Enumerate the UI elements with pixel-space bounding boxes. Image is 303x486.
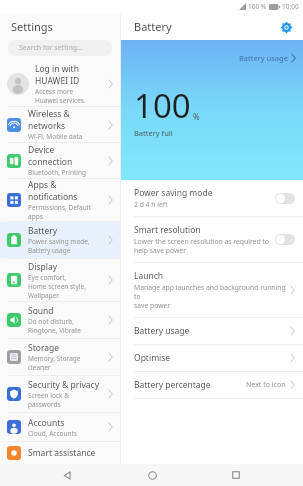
- staticText: Battery percentage: [134, 379, 211, 391]
- staticText: Power saving mode: [134, 187, 213, 199]
- button[interactable]: Toggle: [275, 193, 295, 204]
- staticText: Display: [28, 261, 57, 273]
- staticText: 10:00: [282, 2, 299, 11]
- staticText: Ringtone, Vibrate: [28, 326, 81, 335]
- staticText: Battery usage: [239, 53, 288, 63]
- staticText: Launch: [134, 270, 164, 282]
- staticText: Eye comfort,: [28, 273, 67, 282]
- staticText: Battery usage: [134, 325, 190, 337]
- button[interactable]: Toggle: [275, 234, 295, 245]
- staticText: Optimise: [134, 352, 171, 364]
- staticText: notifications: [28, 191, 78, 203]
- button[interactable]: Recent apps: [219, 464, 253, 486]
- staticText: Settings: [11, 19, 53, 34]
- button[interactable]: Back: [50, 464, 84, 486]
- staticText: Wireless &: [28, 108, 70, 120]
- staticText: networks: [28, 120, 66, 132]
- staticText: Smart resolution: [134, 224, 201, 236]
- staticText: Log in with: [35, 63, 79, 75]
- button[interactable]: Storage: [0, 339, 120, 375]
- staticText: Battery full: [134, 128, 173, 138]
- staticText: Bluetooth, Printing: [28, 168, 86, 177]
- staticText: 100: [134, 83, 191, 128]
- button[interactable]: Power saving mode: [121, 180, 303, 216]
- staticText: Next to icon: [246, 380, 286, 390]
- button[interactable]: Search for setting...: [8, 40, 112, 56]
- staticText: Manage app launches and background runni…: [134, 283, 290, 310]
- staticText: %: [193, 111, 200, 122]
- staticText: Home screen style,: [28, 282, 86, 291]
- button[interactable]: Battery percentage: [121, 372, 303, 398]
- button[interactable]: Display: [0, 259, 120, 301]
- button[interactable]: Home: [135, 464, 169, 486]
- staticText: Wallpaper: [28, 291, 59, 300]
- staticText: Security & privacy: [28, 379, 99, 391]
- button[interactable]: Battery: [0, 222, 120, 258]
- staticText: 2 d 4 h left: [134, 200, 168, 209]
- staticText: Cloud, Accounts: [28, 429, 77, 438]
- staticText: Battery usage: [28, 246, 71, 255]
- button[interactable]: Accounts: [0, 413, 120, 441]
- staticText: Storage: [28, 342, 60, 354]
- staticText: Apps &: [28, 179, 57, 191]
- staticText: passwords: [28, 400, 61, 409]
- staticText: Lower the screen resolution as required …: [134, 237, 269, 255]
- staticText: Screen lock &: [28, 391, 69, 400]
- button[interactable]: Smart assistance: [0, 442, 120, 464]
- staticText: Permissions, Default: [28, 203, 91, 212]
- staticText: 100 %: [248, 2, 267, 11]
- button[interactable]: Smart resolution: [121, 217, 303, 262]
- staticText: Battery: [134, 19, 172, 34]
- staticText: Do not disturb,: [28, 317, 74, 326]
- staticText: Power saving mode,: [28, 237, 90, 246]
- staticText: Sound: [28, 305, 54, 317]
- button[interactable]: Launch: [121, 263, 303, 317]
- staticText: Search for setting...: [19, 43, 83, 53]
- button[interactable]: Sound: [0, 302, 120, 338]
- button[interactable]: Log in with: [0, 62, 120, 106]
- staticText: Huawei services.: [35, 96, 86, 105]
- button[interactable]: Battery settings: [277, 18, 295, 36]
- button[interactable]: Security & privacy: [0, 376, 120, 412]
- staticText: Memory, Storage: [28, 354, 81, 363]
- button[interactable]: Battery usage: [121, 318, 303, 344]
- staticText: Smart assistance: [28, 447, 96, 459]
- staticText: Wi-Fi, Mobile data: [28, 132, 83, 141]
- staticText: Access more: [35, 87, 74, 96]
- staticText: connection: [28, 156, 73, 168]
- staticText: Device: [28, 144, 55, 156]
- staticText: apps: [28, 212, 43, 221]
- button[interactable]: Device: [0, 143, 120, 178]
- staticText: cleaner: [28, 363, 51, 372]
- staticText: Accounts: [28, 417, 65, 429]
- button[interactable]: Optimise: [121, 345, 303, 371]
- button[interactable]: Wireless &: [0, 107, 120, 142]
- staticText: HUAWEI ID: [35, 75, 80, 87]
- button[interactable]: Battery usage: [239, 53, 296, 63]
- staticText: Battery: [28, 225, 58, 237]
- button[interactable]: Apps &: [0, 179, 120, 221]
